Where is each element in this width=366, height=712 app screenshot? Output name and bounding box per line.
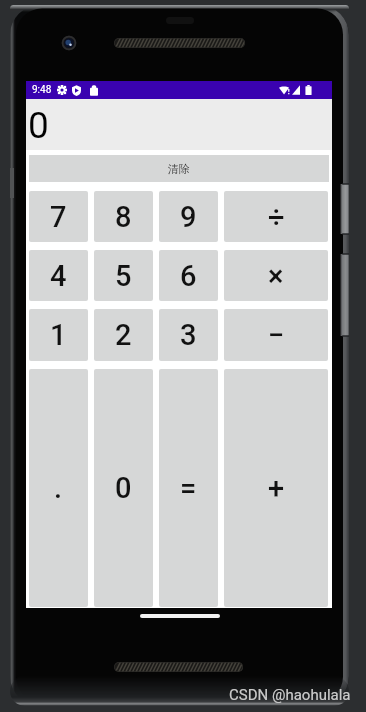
button[interactable]: 8 [94,191,153,242]
staticText: 5 [115,259,132,293]
button[interactable]: × [224,250,328,301]
button[interactable]: 0 [94,369,153,607]
other: Work profile [90,85,98,96]
button[interactable]: + [224,369,328,607]
button[interactable]: 5 [94,250,153,301]
staticText: − [268,318,285,352]
button[interactable]: 2 [94,309,153,361]
button[interactable]: 3 [159,309,218,361]
other: Settings [57,85,67,95]
button[interactable]: 4 [29,250,88,301]
other: Wi-Fi [279,85,291,95]
button[interactable]: 9 [159,191,218,242]
staticText: 0 [115,471,132,505]
staticText: 9 [180,200,197,234]
button[interactable]: ÷ [224,191,328,242]
button[interactable]: = [159,369,218,607]
staticText: 0 [28,104,49,147]
button[interactable]: 6 [159,250,218,301]
staticText: 6 [180,259,197,293]
other: Protected [72,85,81,96]
button[interactable]: − [224,309,328,361]
staticText: 4 [50,259,67,293]
button[interactable]: 清除 [29,155,329,182]
other: Battery [305,85,312,95]
staticText: = [180,471,197,505]
button[interactable]: 1 [29,309,88,361]
staticText: 7 [50,200,67,234]
staticText: 3 [180,318,197,352]
staticText: 9:48 [32,84,52,96]
staticText: + [268,471,285,505]
other: Mobile signal [292,85,300,95]
button[interactable]: . [29,369,88,607]
staticText: ÷ [268,200,285,234]
staticText: 8 [115,200,132,234]
button[interactable]: 7 [29,191,88,242]
staticText: 1 [50,318,67,352]
staticText: × [268,259,284,293]
staticText: 清除 [168,162,190,176]
staticText: CSDN @haohulala [229,686,351,704]
staticText: . [54,471,63,505]
staticText: 2 [115,318,132,352]
